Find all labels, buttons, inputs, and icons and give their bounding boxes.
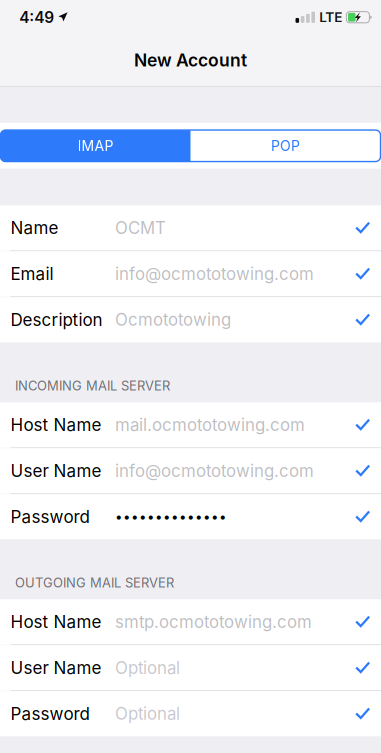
staticText: Password: [10, 506, 89, 527]
staticText: Description: [10, 309, 102, 330]
button[interactable]: IMAP: [0, 130, 190, 162]
staticText: Name: [10, 218, 58, 238]
staticText: Host Name: [10, 612, 101, 632]
staticText: 4:49: [19, 8, 54, 27]
staticText: OCMT: [115, 218, 166, 238]
staticText: OUTGOING MAIL SERVER: [15, 575, 174, 591]
staticText: mail.ocmototowing.com: [115, 415, 305, 435]
button[interactable]: Host Name: [0, 599, 381, 644]
button[interactable]: Password: [0, 691, 381, 736]
staticText: INCOMING MAIL SERVER: [15, 378, 170, 394]
staticText: User Name: [10, 657, 101, 678]
button[interactable]: User Name: [0, 448, 381, 493]
staticText: LTE: [319, 9, 342, 25]
staticText: Host Name: [10, 415, 101, 435]
button[interactable]: Email: [0, 251, 381, 296]
button[interactable]: User Name: [0, 645, 381, 690]
staticText: New Account: [134, 50, 247, 71]
button[interactable]: Description: [0, 297, 381, 342]
staticText: Optional: [115, 658, 180, 678]
staticText: info@ocmototowing.com: [115, 461, 314, 481]
staticText: IMAP: [77, 137, 113, 154]
button[interactable]: Name: [0, 205, 381, 250]
staticText: info@ocmototowing.com: [115, 264, 314, 284]
staticText: User Name: [10, 460, 101, 481]
staticText: smtp.ocmototowing.com: [115, 612, 312, 632]
staticText: ••••••••••••••: [115, 509, 227, 525]
button[interactable]: Password: [0, 494, 381, 539]
staticText: Ocmototowing: [115, 310, 231, 330]
button[interactable]: POP: [190, 130, 380, 162]
staticText: Email: [10, 263, 53, 284]
staticText: Optional: [115, 703, 180, 724]
staticText: Password: [10, 703, 89, 724]
button[interactable]: Host Name: [0, 402, 381, 447]
staticText: POP: [271, 137, 300, 154]
